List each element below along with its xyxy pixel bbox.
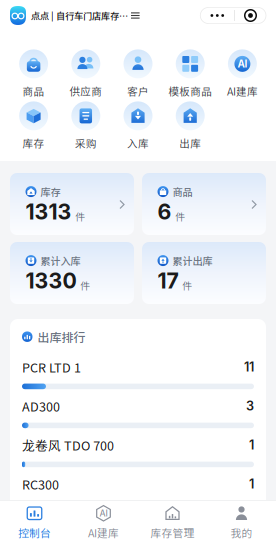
button[interactable]: 供应商	[60, 51, 112, 97]
staticText: 控制台	[18, 525, 51, 540]
staticText: 点点 | 自行车门店库存…	[31, 9, 128, 22]
staticText: PCR LTD 1	[22, 358, 81, 376]
staticText: 库存管理	[150, 525, 194, 540]
staticText: 入库	[127, 135, 149, 151]
button[interactable]: 客户	[112, 51, 164, 97]
button[interactable]: 库存管理	[138, 500, 207, 545]
staticText: AI	[99, 508, 107, 518]
staticText: 供应商	[69, 83, 102, 99]
staticText: 6	[157, 199, 171, 225]
staticText: 11	[244, 359, 254, 374]
staticText: 件	[175, 209, 185, 223]
button[interactable]: 更多	[200, 7, 234, 23]
staticText: RC300	[22, 475, 59, 493]
staticText: 件	[80, 278, 90, 292]
button[interactable]: 模板商品	[164, 51, 216, 97]
staticText: 累计出库	[172, 253, 212, 268]
button[interactable]: 入库	[112, 103, 164, 149]
button[interactable]: 累计出库	[142, 242, 266, 304]
staticText: 1313	[25, 199, 71, 225]
button[interactable]: 商品	[7, 51, 60, 97]
staticText: 出库排行	[37, 328, 85, 345]
staticText: 17	[157, 268, 178, 294]
staticText: 商品	[23, 83, 45, 99]
button[interactable]: 控制台	[0, 500, 69, 545]
button[interactable]: 我的	[207, 500, 276, 545]
staticText: 1	[249, 476, 254, 491]
staticText: 件	[182, 278, 192, 292]
staticText: 库存	[40, 184, 60, 199]
staticText: AI	[237, 58, 247, 70]
button[interactable]: 商品	[142, 173, 266, 235]
staticText: AI建库	[88, 525, 119, 540]
button[interactable]: 采购	[60, 103, 112, 149]
staticText: 库存	[23, 135, 45, 151]
staticText: 3	[246, 398, 254, 413]
button[interactable]: 关闭	[235, 7, 266, 23]
button[interactable]: 累计入库	[10, 242, 134, 304]
button[interactable]: AI	[69, 500, 138, 545]
button[interactable]: 出库	[164, 103, 216, 149]
staticText: 件	[75, 209, 85, 223]
button[interactable]: 库存	[7, 103, 60, 149]
button[interactable]: 库存	[10, 173, 134, 235]
staticText: 1330	[25, 268, 76, 294]
staticText: 商品	[172, 184, 192, 199]
staticText: 1	[249, 437, 254, 452]
staticText: 模板商品	[168, 83, 212, 99]
button[interactable]: AI	[216, 51, 268, 97]
staticText: AI建库	[227, 83, 258, 99]
staticText: 龙卷风 TDO 700	[22, 436, 114, 454]
staticText: 出库	[179, 135, 201, 151]
staticText: AD300	[22, 397, 60, 415]
staticText: 采购	[75, 135, 97, 151]
staticText: 我的	[230, 525, 252, 540]
staticText: 客户	[127, 83, 149, 99]
staticText: 累计入库	[40, 253, 80, 268]
